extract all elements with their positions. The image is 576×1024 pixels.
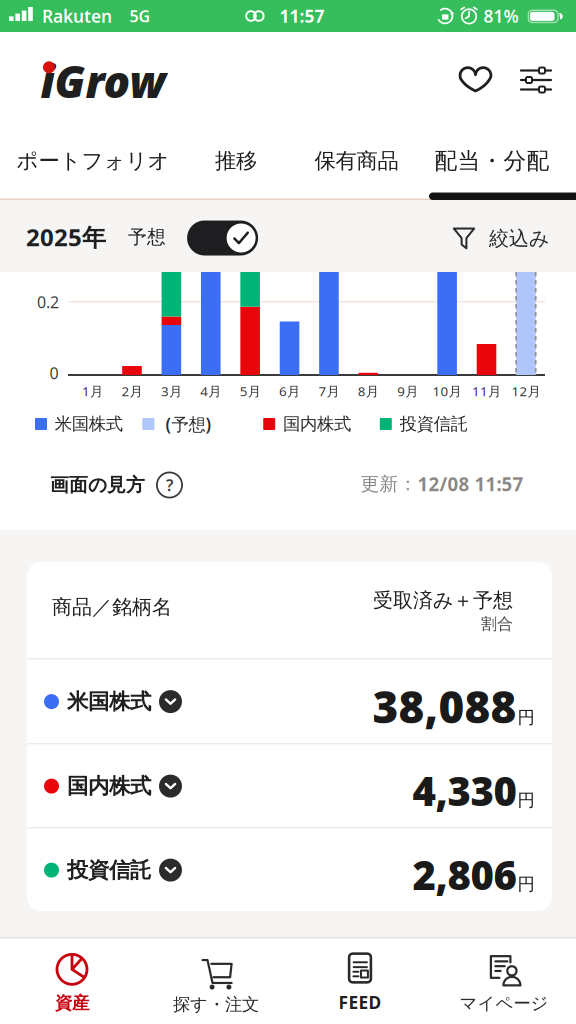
staticText: 2025年 xyxy=(26,221,106,253)
staticText: マイページ xyxy=(459,993,548,1014)
staticText: 画面の見方 xyxy=(50,473,145,496)
staticText: 米国株式 xyxy=(67,688,151,715)
button[interactable]: 資産 xyxy=(55,952,89,1014)
staticText: 10月 xyxy=(433,382,462,400)
button[interactable]: 保有商品 xyxy=(314,148,398,174)
staticText: 6月 xyxy=(279,382,300,400)
staticText: 投資信託 xyxy=(67,857,151,883)
staticText: 8月 xyxy=(358,382,379,400)
staticText: 11:57 xyxy=(279,4,324,27)
staticText: 資産 xyxy=(55,992,89,1014)
staticText: 2月 xyxy=(121,382,142,400)
staticText: 割合 xyxy=(481,614,513,634)
staticText: 5月 xyxy=(240,382,261,400)
staticText: 保有商品 xyxy=(314,148,398,174)
staticText: 5G xyxy=(129,5,150,27)
staticText: iGrow xyxy=(40,52,165,110)
staticText: 円 xyxy=(517,790,534,811)
staticText: 7月 xyxy=(318,382,339,400)
button[interactable]: 推移 xyxy=(215,148,257,174)
staticText: 4,330 xyxy=(412,764,516,817)
button[interactable]: 国内株式 xyxy=(27,743,552,827)
button[interactable]: ポートフォリオ xyxy=(16,148,169,174)
staticText: 3月 xyxy=(161,382,182,400)
staticText: 12月 xyxy=(511,382,540,400)
staticText: 米国株式 xyxy=(55,413,123,435)
staticText: 予想 xyxy=(128,225,166,248)
button[interactable]: 配当・分配 xyxy=(434,147,549,175)
staticText: 商品／銘柄名 xyxy=(52,595,172,619)
staticText: Rakuten xyxy=(42,4,112,27)
button[interactable]: お気に入り xyxy=(455,60,495,100)
staticText: 9月 xyxy=(397,382,418,400)
staticText: 国内株式 xyxy=(67,773,151,799)
staticText: (予想) xyxy=(166,412,212,435)
staticText: 推移 xyxy=(215,148,257,174)
staticText: 探す・注文 xyxy=(173,994,259,1015)
staticText: 0 xyxy=(49,362,58,384)
staticText: 更新： xyxy=(360,472,417,495)
button[interactable]: 米国株式 xyxy=(27,658,552,743)
staticText: 配当・分配 xyxy=(434,147,549,175)
staticText: ? xyxy=(166,474,173,496)
button[interactable]: 画面の見方 xyxy=(50,471,183,498)
staticText: 38,088 xyxy=(372,677,516,735)
staticText: 4月 xyxy=(200,382,221,400)
staticText: 11月 xyxy=(472,382,501,400)
staticText: 円 xyxy=(517,874,534,895)
staticText: 1月 xyxy=(82,382,103,400)
staticText: 0.2 xyxy=(37,291,59,313)
staticText: 81% xyxy=(483,4,518,27)
button[interactable]: 予想を含む xyxy=(187,220,258,255)
staticText: 受取済み＋予想 xyxy=(373,588,513,613)
button[interactable]: 表示設定 xyxy=(518,62,554,98)
staticText: 投資信託 xyxy=(400,413,468,435)
staticText: 絞込み xyxy=(489,226,549,251)
button[interactable]: 探す・注文 xyxy=(173,951,259,1015)
button[interactable]: マイページ xyxy=(459,952,548,1014)
button[interactable]: 絞込み xyxy=(453,226,549,251)
staticText: 2,806 xyxy=(412,848,516,901)
button[interactable]: FEED xyxy=(338,952,381,1014)
staticText: FEED xyxy=(338,991,381,1014)
staticText: 国内株式 xyxy=(283,413,351,435)
button[interactable]: 投資信託 xyxy=(27,827,552,911)
staticText: 12/08 11:57 xyxy=(417,472,523,496)
staticText: ポートフォリオ xyxy=(16,148,169,174)
staticText: 円 xyxy=(517,707,534,728)
